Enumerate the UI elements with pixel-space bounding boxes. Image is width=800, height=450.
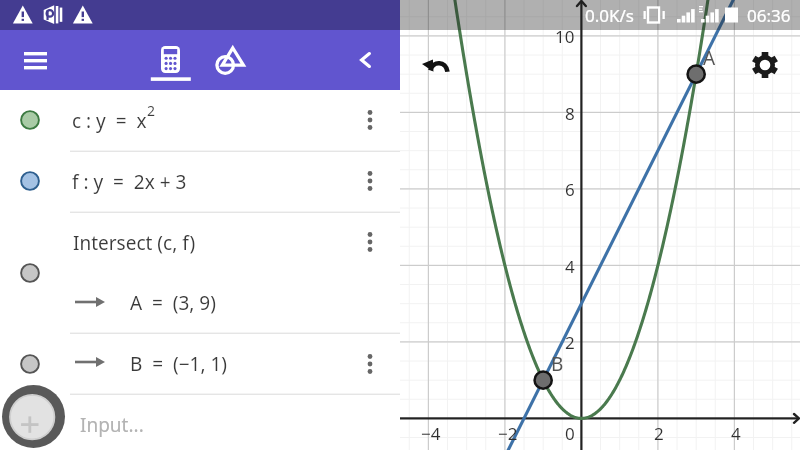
- button[interactable]: Collapse panel: [343, 38, 387, 82]
- staticText: 0: [565, 422, 575, 445]
- button[interactable]: More options: [350, 222, 390, 262]
- button[interactable]: More options: [350, 161, 390, 201]
- button[interactable]: [70, 396, 400, 450]
- button[interactable]: Add input: [2, 385, 65, 448]
- button[interactable]: More options: [350, 344, 390, 384]
- button[interactable]: Settings: [742, 42, 788, 88]
- staticText: 6: [565, 178, 575, 201]
- button[interactable]: [0, 334, 400, 394]
- button[interactable]: Open menu: [13, 38, 57, 82]
- button[interactable]: Geometry: [203, 39, 247, 83]
- staticText: −4: [421, 422, 441, 445]
- button[interactable]: Undo: [412, 42, 458, 88]
- staticText: 8: [565, 102, 575, 125]
- staticText: 2: [147, 101, 156, 120]
- staticText: A = (3, 9): [130, 290, 216, 316]
- staticText: Input...: [80, 412, 144, 438]
- button[interactable]: [0, 90, 400, 151]
- staticText: A: [703, 45, 716, 71]
- staticText: 06:36: [747, 4, 791, 27]
- staticText: Intersect (c, f): [73, 230, 196, 256]
- staticText: 10: [555, 25, 575, 48]
- staticText: 4: [565, 255, 575, 278]
- button[interactable]: [0, 213, 400, 333]
- button[interactable]: [0, 152, 400, 212]
- staticText: 0.0K/s: [585, 4, 634, 27]
- staticText: B = (−1, 1): [130, 351, 228, 377]
- staticText: 4: [731, 422, 741, 445]
- button[interactable]: Calculator: [146, 30, 196, 88]
- staticText: f : y = 2x + 3: [72, 169, 187, 195]
- staticText: 2: [565, 331, 575, 354]
- staticText: −2: [498, 422, 518, 445]
- button[interactable]: More options: [350, 100, 390, 140]
- staticText: B: [551, 351, 564, 377]
- staticText: 2: [654, 422, 664, 445]
- staticText: c : y = x: [72, 108, 147, 134]
